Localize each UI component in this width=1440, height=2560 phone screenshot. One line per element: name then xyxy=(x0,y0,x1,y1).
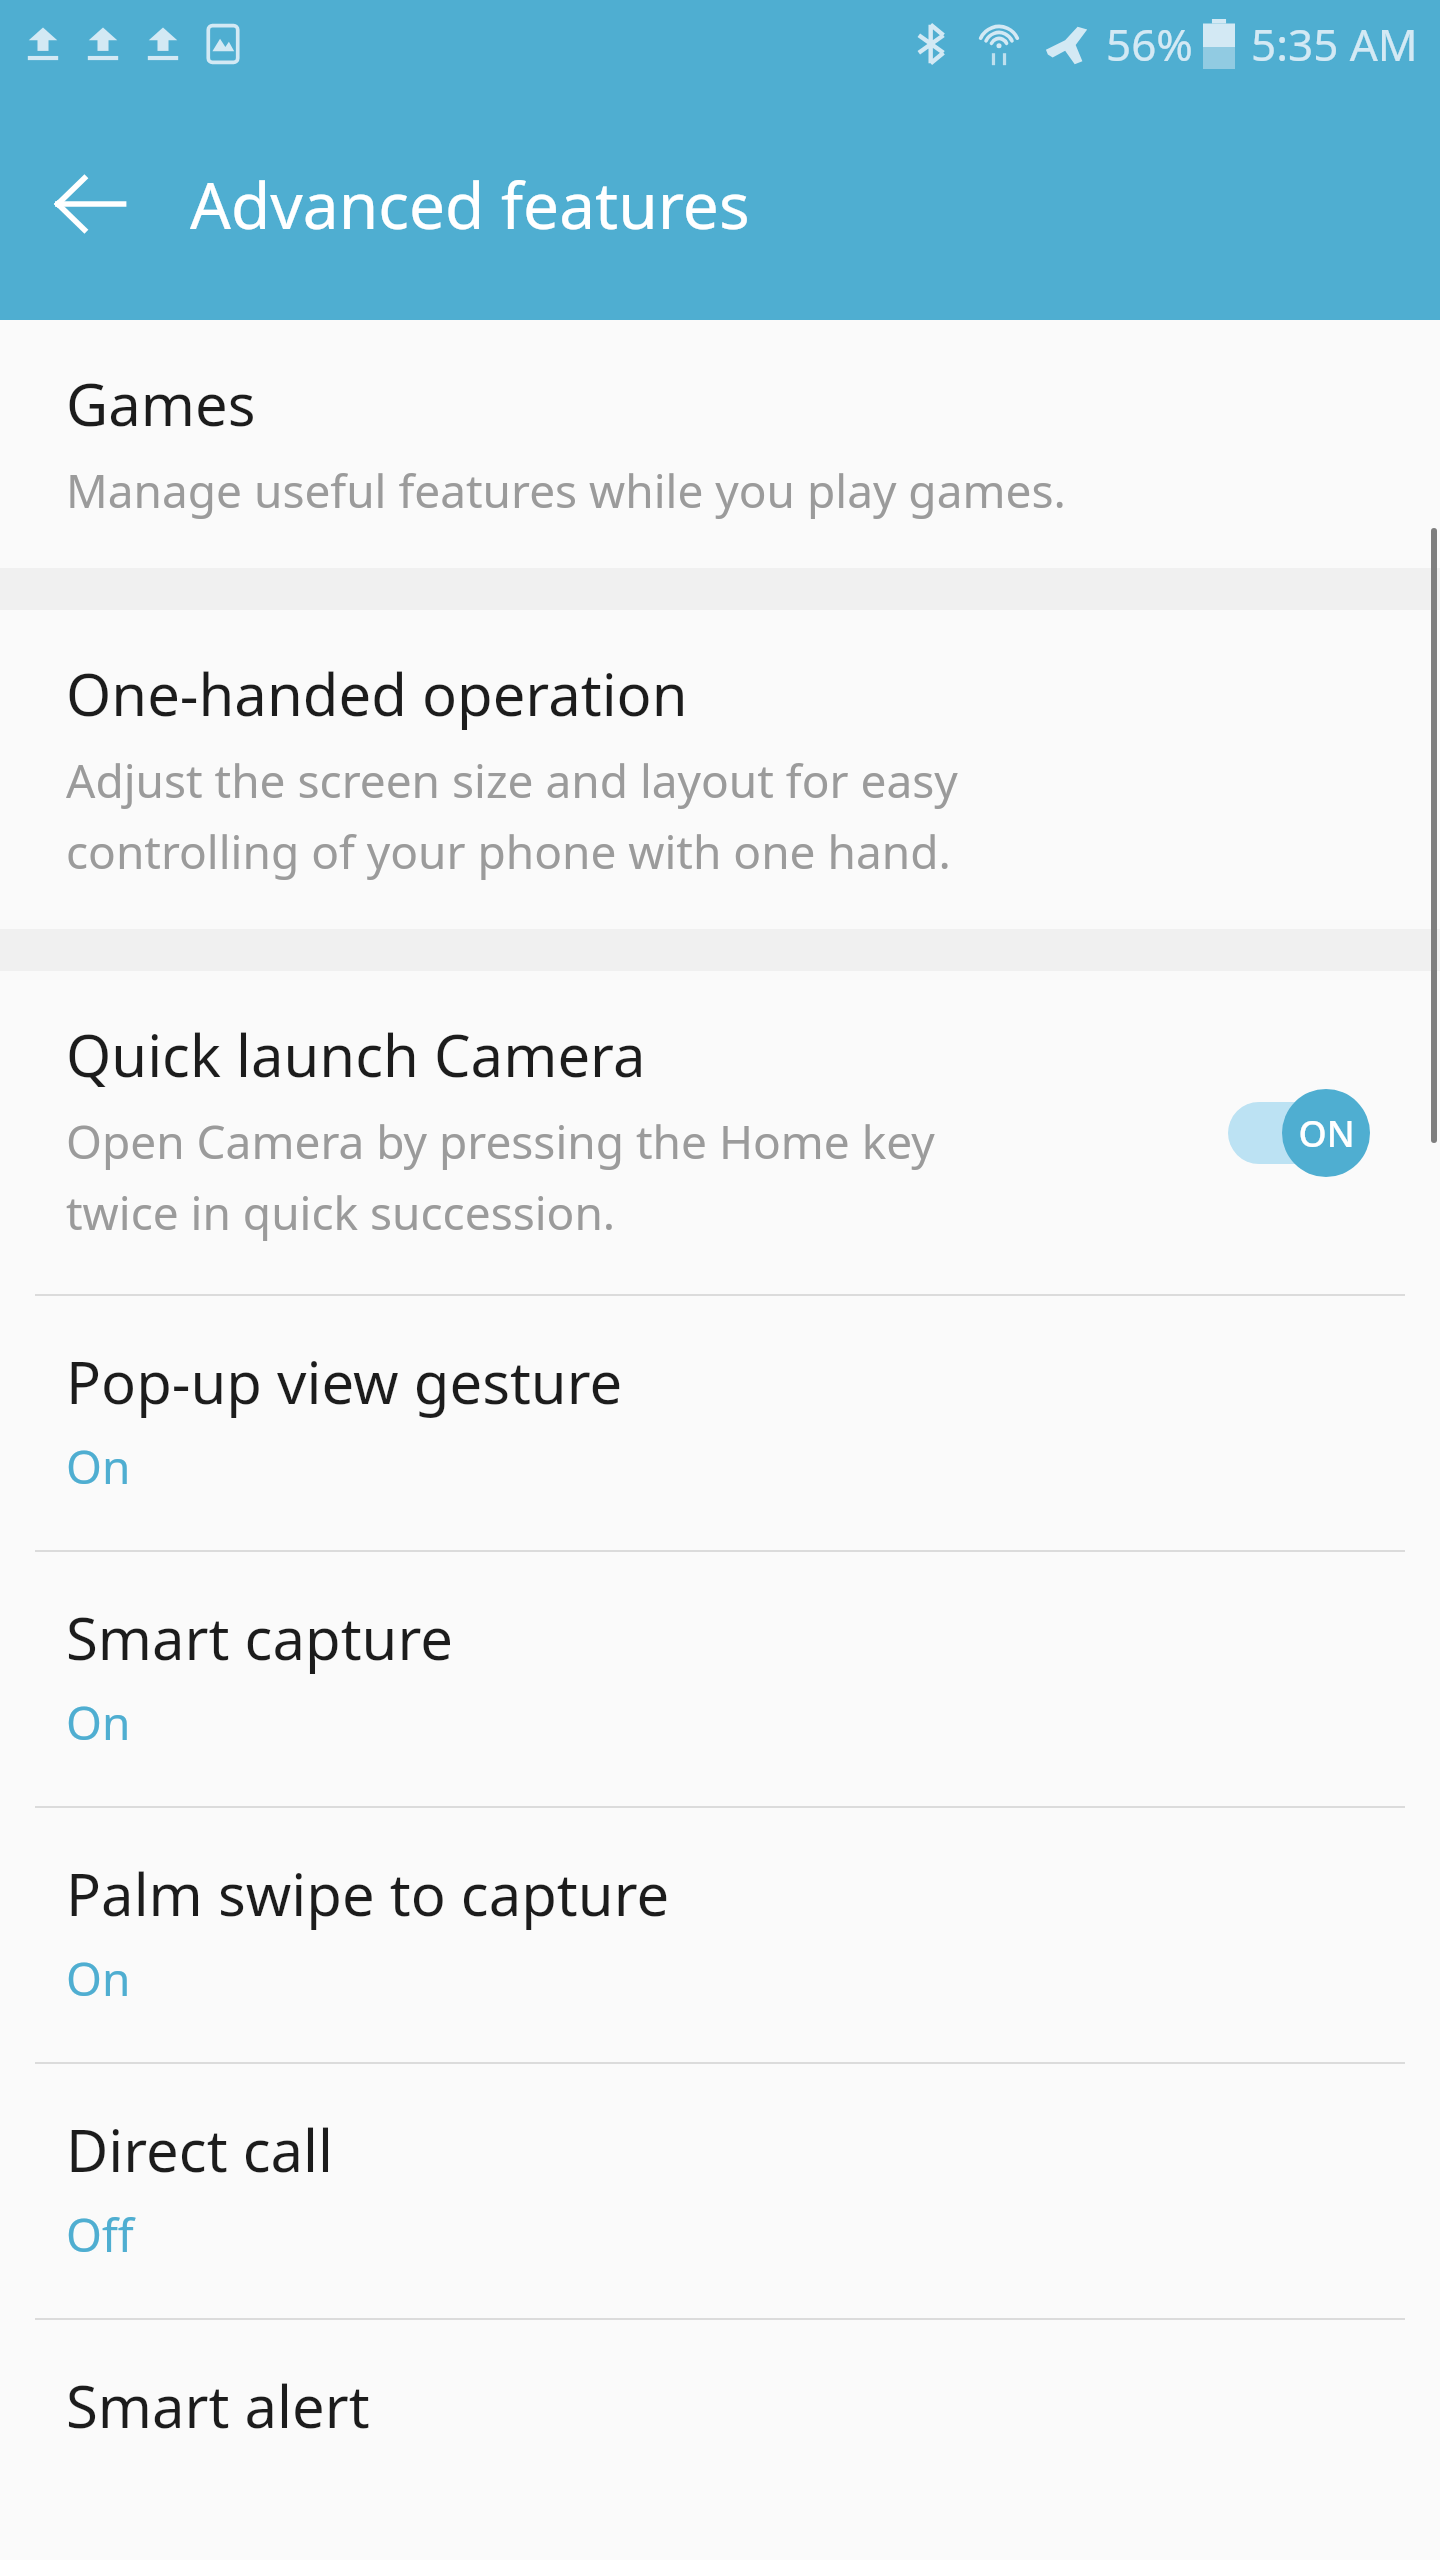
button[interactable]: Direct call xyxy=(0,2064,1440,2318)
button[interactable]: Games xyxy=(0,320,1440,568)
staticText: Open Camera by pressing the Home key xyxy=(66,1110,935,1173)
button[interactable]: Back xyxy=(30,144,150,264)
staticText: twice in quick succession. xyxy=(66,1181,616,1244)
staticText: Advanced features xyxy=(190,161,750,248)
staticText: Pop-up view gesture xyxy=(66,1342,623,1421)
staticText: On xyxy=(66,1435,131,1498)
staticText: Smart capture xyxy=(66,1598,453,1677)
staticText: On xyxy=(66,1947,131,2010)
button[interactable]: Quick launch Camera xyxy=(0,971,1440,1294)
staticText: 5:35 AM xyxy=(1251,14,1418,74)
button[interactable]: One-handed operation xyxy=(0,610,1440,929)
staticText: On xyxy=(66,1691,131,1754)
button[interactable]: Smart alert xyxy=(0,2320,1440,2497)
staticText: Off xyxy=(66,2203,134,2266)
staticText: Games xyxy=(66,364,256,443)
button[interactable]: Pop-up view gesture xyxy=(0,1296,1440,1550)
button[interactable]: Quick launch Camera toggle, On xyxy=(1224,1078,1384,1188)
staticText: ON xyxy=(1298,1109,1355,1158)
staticText: Adjust the screen size and layout for ea… xyxy=(66,749,958,812)
staticText: Direct call xyxy=(66,2110,333,2189)
staticText: controlling of your phone with one hand. xyxy=(66,820,951,883)
staticText: Smart alert xyxy=(66,2366,370,2445)
staticText: One-handed operation xyxy=(66,654,688,733)
staticText: Quick launch Camera xyxy=(66,1015,646,1094)
staticText: 56% xyxy=(1106,14,1193,74)
staticText: Manage useful features while you play ga… xyxy=(66,459,1066,522)
staticText: Palm swipe to capture xyxy=(66,1854,670,1933)
button[interactable]: Palm swipe to capture xyxy=(0,1808,1440,2062)
button[interactable]: Smart capture xyxy=(0,1552,1440,1806)
